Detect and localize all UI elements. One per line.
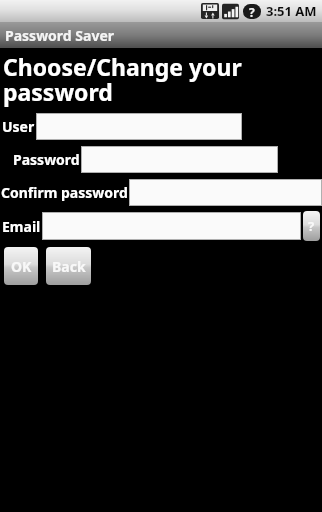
staticText: User bbox=[2, 117, 35, 136]
staticText: Email bbox=[2, 217, 41, 236]
staticText: Choose/Change your password bbox=[3, 51, 242, 108]
button[interactable]: ? bbox=[303, 211, 320, 241]
staticText: Password Saver bbox=[5, 26, 115, 45]
staticText: ? bbox=[308, 217, 315, 235]
staticText: Confirm password bbox=[1, 183, 128, 202]
button[interactable]: Back bbox=[46, 247, 91, 285]
staticText: OK bbox=[11, 257, 32, 276]
other: Help bbox=[303, 211, 320, 241]
staticText: 3:51 AM bbox=[266, 2, 317, 20]
staticText: Password bbox=[13, 150, 80, 169]
button[interactable]: OK bbox=[4, 247, 38, 285]
staticText: ? bbox=[249, 4, 255, 20]
staticText: Back bbox=[52, 257, 86, 276]
